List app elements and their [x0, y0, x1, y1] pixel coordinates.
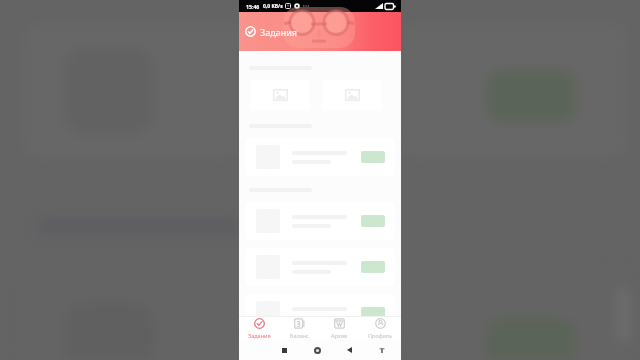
- staticText: Баланс: [290, 332, 309, 339]
- button[interactable]: Архив: [319, 317, 360, 339]
- button[interactable]: [246, 202, 394, 240]
- button[interactable]: Back: [342, 343, 356, 357]
- staticText: Архив: [331, 332, 348, 339]
- button[interactable]: [246, 248, 394, 286]
- staticText: Задания: [248, 332, 271, 339]
- button[interactable]: Задания: [239, 317, 279, 339]
- button[interactable]: Hide keyboard: [375, 343, 389, 357]
- staticText: 0,0 KB/s: [263, 3, 283, 10]
- button[interactable]: Профиль: [360, 317, 401, 339]
- button[interactable]: [246, 294, 394, 316]
- staticText: Профиль: [368, 332, 393, 339]
- button[interactable]: [250, 80, 310, 110]
- button[interactable]: Recents: [277, 343, 291, 357]
- button[interactable]: [246, 138, 394, 176]
- staticText: 15:46: [246, 3, 260, 10]
- button[interactable]: [322, 80, 382, 110]
- button[interactable]: Баланс: [279, 317, 319, 339]
- staticText: Задания: [260, 26, 297, 38]
- button[interactable]: Home: [310, 343, 324, 357]
